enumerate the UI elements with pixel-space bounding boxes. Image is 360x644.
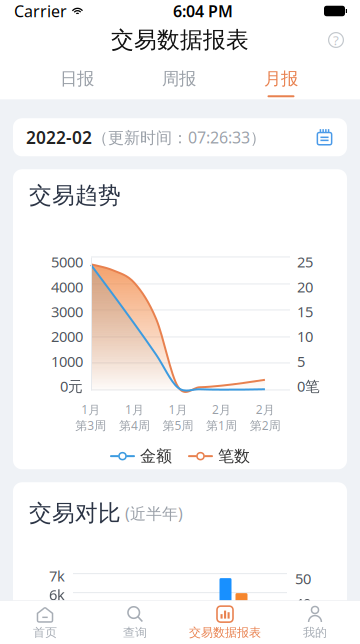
staticText: 1月: [125, 401, 144, 417]
staticText: 交易趋势: [29, 182, 121, 209]
staticText: 0元: [60, 376, 83, 396]
staticText: Carrier: [14, 0, 67, 22]
staticText: 2月: [256, 401, 275, 417]
button[interactable]: 我的: [270, 598, 360, 644]
staticText: 第3周: [75, 417, 106, 433]
staticText: 5k: [49, 603, 65, 622]
staticText: 2022-02: [26, 126, 92, 149]
staticText: 查询: [123, 625, 147, 640]
button[interactable]: 月报: [230, 63, 332, 97]
staticText: 50: [295, 569, 311, 588]
staticText: 4000: [51, 277, 83, 296]
staticText: 6:04 PM: [173, 0, 233, 22]
staticText: 20: [297, 277, 313, 296]
staticText: 首页: [33, 625, 57, 640]
staticText: 周报: [162, 68, 196, 89]
button[interactable]: 查询: [90, 598, 180, 644]
staticText: 5000: [51, 252, 83, 272]
staticText: 1月: [168, 401, 187, 417]
staticText: 2000: [51, 327, 83, 346]
button[interactable]: 首页: [0, 598, 90, 644]
staticText: 6k: [49, 585, 65, 603]
button[interactable]: 交易数据报表: [180, 598, 270, 644]
staticText: 15: [297, 302, 313, 321]
staticText: 交易对比: [29, 499, 121, 527]
staticText: 1000: [51, 351, 83, 371]
staticText: 40: [295, 594, 311, 613]
staticText: 笔数: [218, 446, 250, 466]
button[interactable]: 周报: [128, 63, 230, 97]
staticText: 0笔: [297, 376, 320, 396]
staticText: 第1周: [206, 417, 237, 433]
staticText: 第4周: [119, 417, 150, 433]
staticText: (近半年): [121, 503, 183, 524]
staticText: 30: [295, 618, 311, 638]
staticText: 4k: [49, 622, 65, 641]
staticText: 5: [297, 351, 305, 371]
staticText: 交易数据报表: [189, 625, 261, 640]
staticText: ?: [333, 31, 339, 49]
staticText: （更新时间：07:26:33）: [92, 127, 266, 148]
staticText: 月报: [264, 68, 298, 89]
staticText: 我的: [303, 625, 327, 640]
staticText: 3000: [51, 302, 83, 321]
staticText: 25: [297, 252, 313, 272]
button[interactable]: 日报: [26, 63, 128, 97]
button[interactable]: 2022-02: [13, 118, 347, 156]
staticText: 2月: [212, 401, 231, 417]
staticText: 第5周: [162, 417, 193, 433]
staticText: 1月: [81, 401, 100, 417]
staticText: 日报: [60, 68, 94, 89]
staticText: 10: [297, 327, 313, 346]
staticText: 交易数据报表: [111, 26, 249, 54]
staticText: 第2周: [250, 417, 281, 433]
staticText: 7k: [49, 566, 65, 585]
staticText: 金额: [140, 446, 172, 466]
button[interactable]: Help: [322, 26, 350, 54]
